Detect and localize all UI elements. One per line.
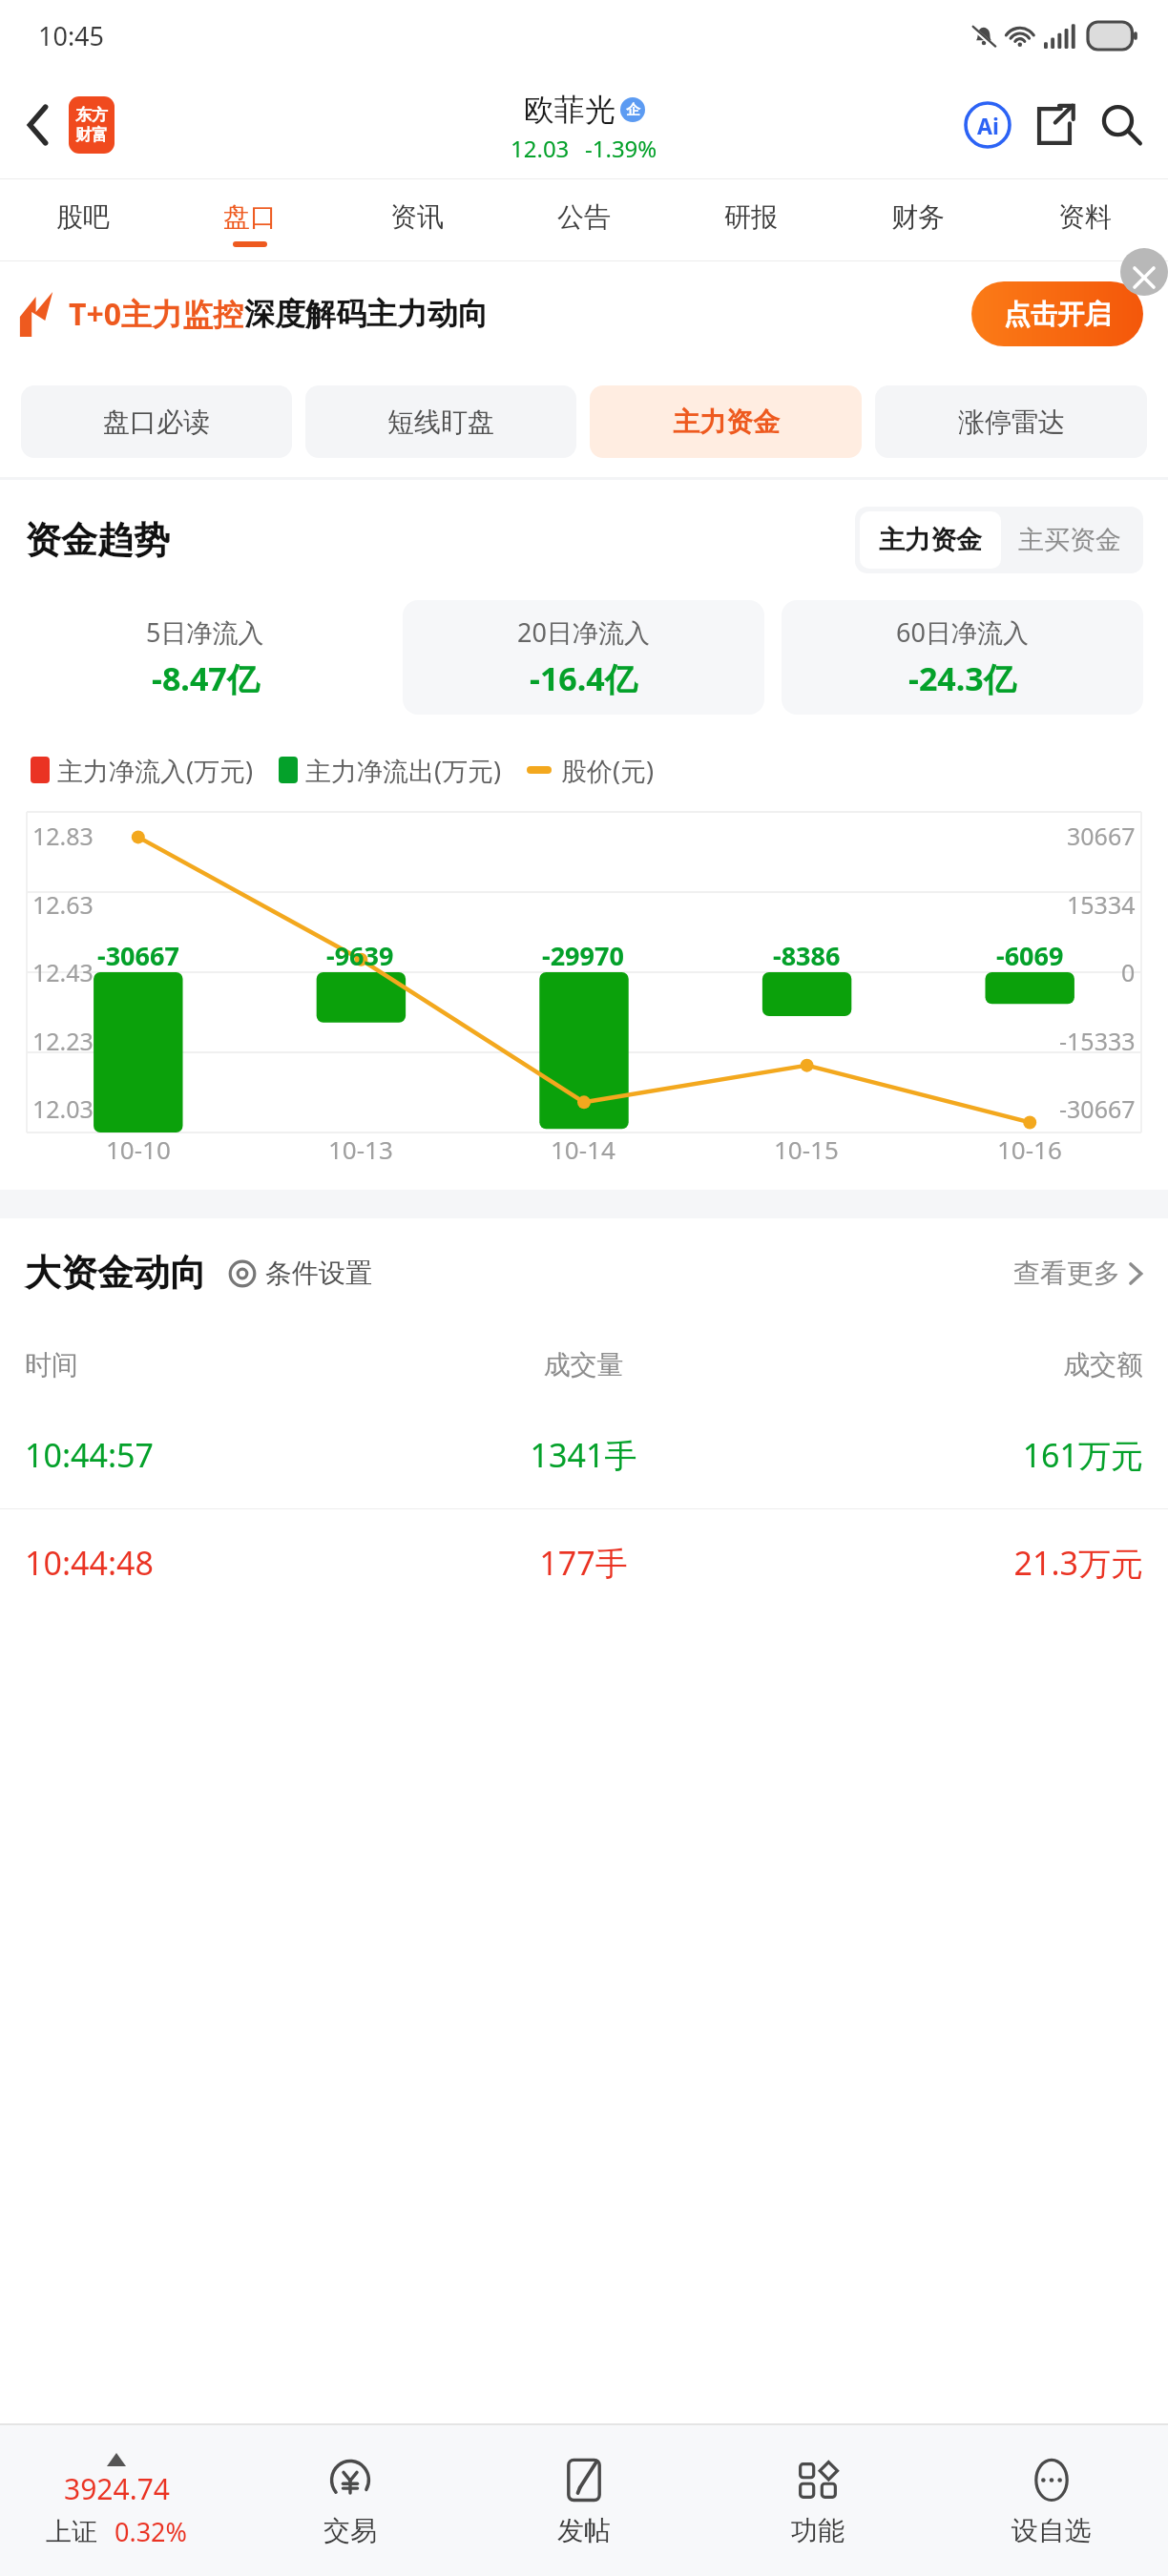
button[interactable]: 60日净流入 xyxy=(782,600,1143,715)
staticText: 21.3万元 xyxy=(770,1541,1143,1585)
staticText: 12.03 xyxy=(32,1092,94,1125)
staticText: 60日净流入 xyxy=(896,614,1029,650)
staticText: 盘口必读 xyxy=(103,405,210,439)
staticText: 15334 xyxy=(1067,888,1136,921)
staticText: 10-13 xyxy=(328,1132,393,1166)
button[interactable]: AI assistant xyxy=(960,97,1015,153)
staticText: 大资金动向 xyxy=(25,1250,206,1296)
button[interactable]: 财务 xyxy=(834,179,1001,261)
button[interactable]: Search xyxy=(1094,97,1149,153)
staticText: 研报 xyxy=(724,200,778,234)
button[interactable]: 主买资金 xyxy=(1018,511,1121,569)
staticText: 10-16 xyxy=(997,1132,1062,1166)
button[interactable]: 10:44:48 xyxy=(25,1509,1143,1616)
button[interactable]: 研报 xyxy=(667,179,834,261)
staticText: 主力净流入(万元) xyxy=(57,753,254,788)
staticText: 成交额 xyxy=(770,1348,1143,1381)
staticText: 10-15 xyxy=(774,1132,839,1166)
staticText: 12.43 xyxy=(32,956,94,988)
staticText: -15333 xyxy=(1059,1025,1136,1057)
staticText: 20日净流入 xyxy=(517,614,650,650)
button[interactable]: 交易 xyxy=(233,2425,467,2576)
staticText: -30667 xyxy=(1059,1092,1136,1125)
button[interactable]: 3924.74 xyxy=(0,2453,233,2549)
button[interactable]: 功能 xyxy=(700,2425,934,2576)
staticText: 0 xyxy=(1121,956,1136,988)
staticText: 条件设置 xyxy=(265,1257,372,1290)
staticText: 欧菲光 xyxy=(524,91,615,129)
button[interactable]: Close ad xyxy=(1120,248,1168,296)
staticText: 涨停雷达 xyxy=(958,405,1065,439)
staticText: 盘口 xyxy=(223,200,277,234)
staticText: 企 xyxy=(626,101,640,119)
staticText: -29970 xyxy=(542,938,624,973)
staticText: 10:45 xyxy=(38,18,105,53)
staticText: 12.83 xyxy=(32,820,94,852)
staticText: 功能 xyxy=(791,2514,845,2547)
button[interactable]: 发帖 xyxy=(467,2425,700,2576)
staticText: Ai xyxy=(977,111,999,140)
staticText: 发帖 xyxy=(557,2514,611,2547)
staticText: 设自选 xyxy=(1012,2514,1092,2547)
button[interactable]: Back xyxy=(11,98,65,152)
staticText: 点击开启 xyxy=(1004,298,1111,331)
staticText: 财务 xyxy=(891,200,945,234)
button[interactable]: 20日净流入 xyxy=(403,600,764,715)
button[interactable]: 股吧 xyxy=(0,179,166,261)
staticText: -16.4亿 xyxy=(530,656,637,700)
staticText: -8386 xyxy=(773,938,841,973)
staticText: 时间 xyxy=(25,1348,397,1381)
staticText: T+0主力监控 xyxy=(69,293,244,335)
staticText: 主买资金 xyxy=(1018,524,1121,556)
staticText: 深度解码主力动向 xyxy=(244,295,489,333)
button[interactable]: 设自选 xyxy=(934,2425,1168,2576)
staticText: 东方 xyxy=(75,105,108,125)
staticText: 5日净流入 xyxy=(146,614,264,650)
button[interactable]: 查看更多 xyxy=(1013,1257,1143,1290)
staticText: 成交量 xyxy=(397,1348,770,1381)
button[interactable]: 10:44:57 xyxy=(25,1402,1143,1508)
staticText: -30667 xyxy=(97,938,179,973)
staticText: -24.3亿 xyxy=(908,656,1016,700)
staticText: -8.47亿 xyxy=(152,656,260,700)
staticText: 12.63 xyxy=(32,888,94,921)
staticText: 股吧 xyxy=(56,200,110,234)
staticText: 交易 xyxy=(323,2514,377,2547)
staticText: 资料 xyxy=(1058,200,1112,234)
button[interactable]: 盘口必读 xyxy=(21,385,292,458)
staticText: 177手 xyxy=(397,1541,770,1585)
staticText: 主力净流出(万元) xyxy=(305,753,502,788)
button[interactable]: 涨停雷达 xyxy=(875,385,1147,458)
button[interactable]: 5日净流入 xyxy=(25,600,386,715)
staticText: 公告 xyxy=(557,200,611,234)
staticText: -6069 xyxy=(996,938,1064,973)
staticText: 财富 xyxy=(75,125,108,145)
staticText: 161万元 xyxy=(770,1433,1143,1477)
button[interactable]: 条件设置 xyxy=(227,1257,372,1290)
button[interactable]: 主力资金 xyxy=(879,511,982,569)
button[interactable]: 盘口 xyxy=(166,179,333,261)
staticText: 10:44:48 xyxy=(25,1541,397,1585)
staticText: 0.32% xyxy=(115,2514,188,2549)
staticText: 主力资金 xyxy=(673,405,780,439)
staticText: 30667 xyxy=(1067,820,1136,852)
staticText: 主力资金 xyxy=(879,524,982,556)
button[interactable]: 公告 xyxy=(500,179,667,261)
staticText: 上证 xyxy=(46,2516,97,2548)
button[interactable]: 短线盯盘 xyxy=(305,385,576,458)
staticText: 股价(元) xyxy=(561,753,655,788)
staticText: 10:44:57 xyxy=(25,1433,397,1477)
staticText: 12.03 xyxy=(511,133,570,164)
staticText: 3924.74 xyxy=(64,2469,170,2508)
button[interactable]: 主力资金 xyxy=(590,385,862,458)
staticText: -9639 xyxy=(326,938,394,973)
staticText: -1.39% xyxy=(585,133,657,164)
staticText: 1341手 xyxy=(397,1433,770,1477)
button[interactable]: 资讯 xyxy=(333,179,500,261)
staticText: 10-10 xyxy=(106,1132,171,1166)
button[interactable]: 点击开启 xyxy=(971,281,1143,346)
button[interactable]: 资料 xyxy=(1001,179,1168,261)
button[interactable]: East Money logo xyxy=(69,96,115,154)
staticText: 资金趋势 xyxy=(25,517,170,563)
button[interactable]: Share xyxy=(1027,97,1082,153)
